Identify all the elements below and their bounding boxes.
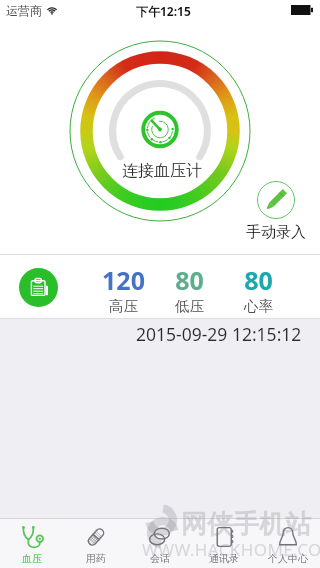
staticText: 血压 [22,552,42,565]
staticText: 网侠手机站 [181,508,311,541]
staticText: 120 [102,263,145,297]
button[interactable]: 用药 [64,519,128,568]
button[interactable]: 个人中心 [256,519,320,568]
staticText: 连接血压计 [122,161,202,181]
staticText: WWW.HACKHOME.COM [142,538,320,561]
staticText: 用药 [86,552,106,565]
button[interactable]: 会话 [128,519,192,568]
staticText: 80 [175,263,204,297]
staticText: 2015-09-29 12:15:12 [136,322,302,346]
staticText: 手动录入 [246,223,306,242]
button[interactable]: 120 [93,263,153,315]
button[interactable]: 80 [228,263,288,315]
button[interactable]: 手动录入 [245,181,307,242]
staticText: 心率 [244,297,273,315]
staticText: 80 [244,263,273,297]
button[interactable]: 血压 [0,519,64,568]
button[interactable]: 80 [159,263,219,315]
staticText: 下午12:15 [136,3,191,19]
staticText: 高压 [109,297,138,315]
staticText: 个人中心 [268,552,308,565]
button[interactable]: 通讯录 [192,519,256,568]
staticText: 会话 [150,552,170,565]
staticText: 运营商 [6,3,42,18]
staticText: 通讯录 [209,552,239,565]
staticText: 低压 [175,297,204,315]
